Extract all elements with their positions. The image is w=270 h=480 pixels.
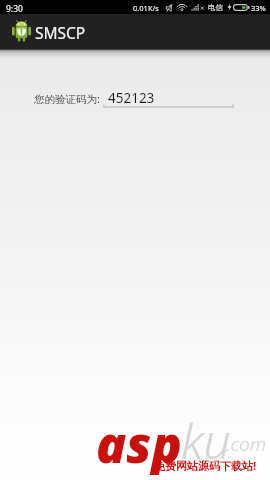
staticText: 452123 [108, 89, 155, 107]
staticText: ku [181, 408, 231, 473]
staticText: asp [96, 410, 182, 478]
button[interactable]: 452123 [103, 86, 234, 108]
staticText: 您的验证码为: [34, 92, 100, 106]
staticText: 33% [251, 3, 266, 13]
staticText: .com [226, 431, 267, 457]
staticText: 电信 [208, 3, 223, 12]
staticText: SMSCP [35, 22, 86, 43]
button[interactable]: SMSCP app logo [6, 14, 94, 49]
staticText: 免费网站源码下载站! [154, 458, 257, 473]
staticText: 9:30 [6, 3, 23, 15]
staticText: 0.01K/s [133, 3, 159, 13]
